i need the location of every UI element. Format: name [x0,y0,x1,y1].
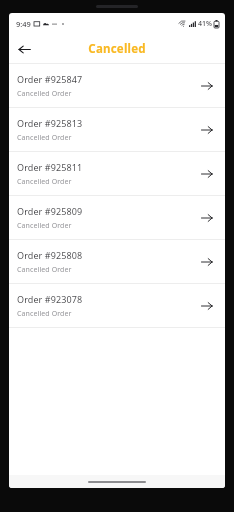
button[interactable]: Order #925808 [9,240,225,283]
button[interactable]: Open order details [197,296,217,316]
button[interactable]: Order #925847 [9,64,225,107]
staticText: Order #925809 [17,205,83,217]
staticText: Cancelled Order [17,89,72,99]
button[interactable]: Order #925813 [9,108,225,151]
staticText: Cancelled Order [17,221,72,231]
button[interactable]: Open order details [197,76,217,96]
staticText: Order #925847 [17,73,83,85]
staticText: Order #925811 [17,161,83,173]
button[interactable]: Open order details [197,164,217,184]
button[interactable]: Back [12,37,36,61]
staticText: Order #923078 [17,293,83,305]
button[interactable]: Open order details [197,208,217,228]
staticText: Cancelled Order [17,177,72,187]
button[interactable]: Order #925809 [9,196,225,239]
staticText: 41% [198,19,212,29]
staticText: Order #925813 [17,117,83,129]
staticText: Cancelled Order [17,265,72,275]
staticText: Cancelled Order [17,309,72,319]
staticText: Order #925808 [17,249,83,261]
staticText: 9:49 [16,19,31,29]
staticText: Cancelled [88,41,146,57]
button[interactable]: Open order details [197,252,217,272]
staticText: Cancelled Order [17,133,72,143]
button[interactable]: Order #925811 [9,152,225,195]
button[interactable]: Order #923078 [9,284,225,327]
button[interactable]: Open order details [197,120,217,140]
